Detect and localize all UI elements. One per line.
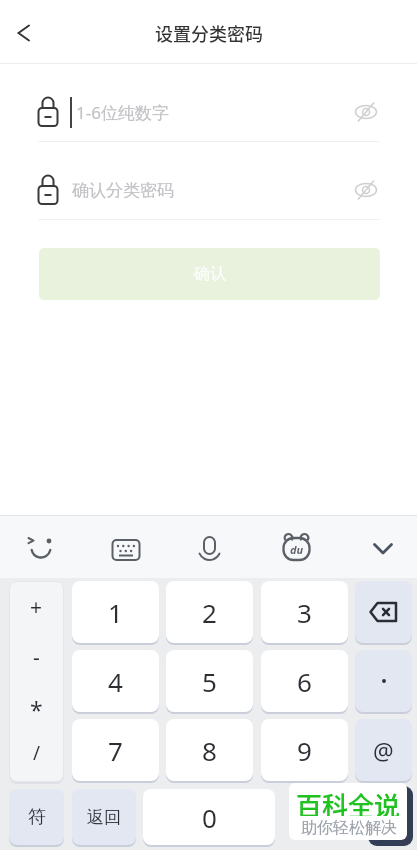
button[interactable] — [8, 17, 42, 49]
button[interactable]: 3 — [261, 581, 348, 643]
staticText: 4 — [108, 664, 123, 699]
button[interactable]: @ — [355, 719, 412, 781]
button[interactable] — [363, 529, 403, 569]
button[interactable] — [189, 528, 230, 568]
button[interactable]: 8 — [166, 719, 253, 781]
button[interactable]: 返回 — [72, 789, 136, 845]
button[interactable]: du — [276, 528, 317, 568]
staticText: * — [30, 694, 43, 725]
button[interactable]: 4 — [72, 650, 159, 712]
staticText: 6 — [297, 664, 312, 699]
staticText: 助你轻松解决 — [301, 818, 397, 838]
button[interactable]: 1 — [72, 581, 159, 643]
staticText: 返回 — [87, 807, 121, 828]
staticText: du — [290, 542, 304, 557]
button[interactable]: 确认 — [39, 248, 380, 300]
button[interactable] — [106, 530, 146, 570]
staticText: 5 — [202, 664, 217, 699]
staticText: 9 — [297, 733, 312, 768]
staticText: - — [33, 643, 40, 672]
staticText: 1 — [108, 595, 123, 630]
button[interactable]: 7 — [72, 719, 159, 781]
button[interactable]: 9 — [261, 719, 348, 781]
staticText: 7 — [108, 733, 123, 768]
button[interactable]: 6 — [261, 650, 348, 712]
button[interactable] — [351, 175, 382, 205]
button[interactable]: 5 — [166, 650, 253, 712]
button[interactable]: 符 — [9, 789, 64, 845]
staticText: 确认 — [194, 264, 226, 284]
staticText: 百科全说 — [296, 786, 401, 816]
staticText: 设置分类密码 — [155, 20, 263, 46]
staticText: + — [30, 593, 43, 622]
staticText: 1-6位纯数字 — [76, 101, 169, 124]
button[interactable] — [355, 650, 412, 712]
button[interactable] — [38, 166, 342, 218]
staticText: @ — [373, 735, 394, 766]
staticText: 0 — [202, 800, 217, 835]
staticText: / — [33, 740, 41, 766]
button[interactable]: 0 — [143, 789, 275, 845]
staticText: 3 — [297, 595, 312, 630]
staticText: 符 — [28, 806, 46, 829]
button[interactable] — [355, 581, 412, 643]
staticText: 8 — [202, 733, 217, 768]
button[interactable] — [351, 97, 382, 127]
button[interactable] — [38, 88, 342, 140]
staticText: 2 — [202, 595, 217, 630]
button[interactable] — [9, 581, 64, 782]
staticText: 确认分类密码 — [72, 180, 174, 201]
button[interactable]: 2 — [166, 581, 253, 643]
button[interactable] — [21, 528, 61, 568]
